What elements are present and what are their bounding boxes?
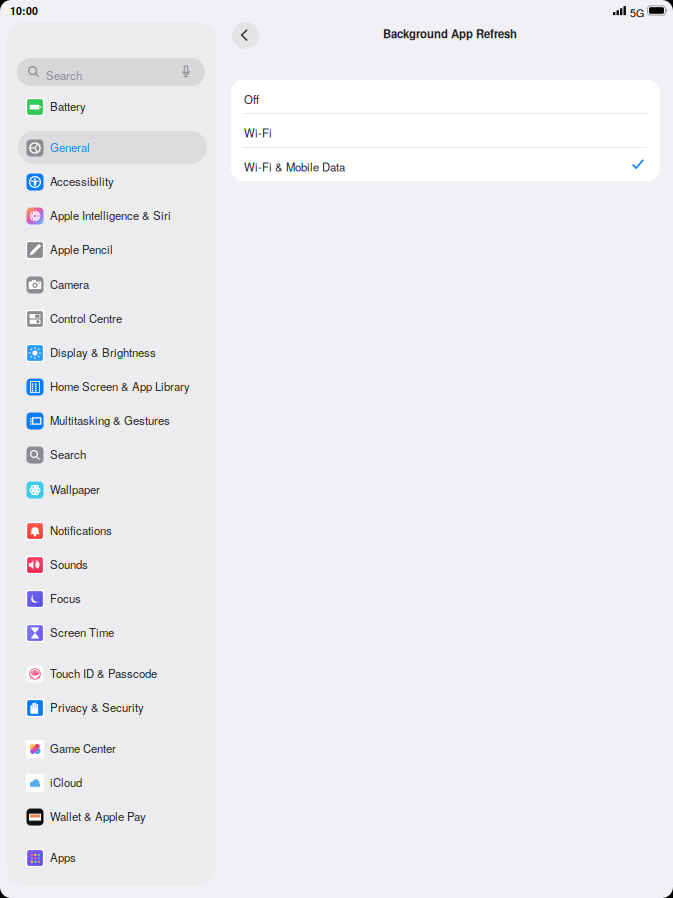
button[interactable]: Control Centre [18,302,207,335]
button[interactable]: Sounds [18,548,207,581]
button[interactable]: Notifications [18,514,207,547]
button[interactable]: Privacy & Security [18,691,207,724]
staticText: Wallet & Apple Pay [50,808,146,824]
staticText: Search [46,67,82,83]
button[interactable]: Game Center [18,732,207,765]
staticText: Accessibility [50,173,114,189]
staticText: iCloud [50,774,82,790]
staticText: Camera [50,276,89,292]
staticText: Control Centre [50,310,122,326]
button[interactable]: Display & Brightness [18,336,207,369]
button[interactable]: Touch ID & Passcode [18,657,207,690]
staticText: Display & Brightness [50,344,156,360]
staticText: Focus [50,590,81,606]
button[interactable]: General [18,131,207,164]
staticText: 10:00 [10,3,38,18]
button[interactable]: Wallet & Apple Pay [18,800,207,833]
button[interactable]: Apps [18,841,207,874]
button[interactable]: iCloud [18,766,207,799]
button[interactable]: Home Screen & App Library [18,370,207,403]
staticText: Search [50,446,86,462]
staticText: Privacy & Security [50,699,144,715]
staticText: Apple Pencil [50,241,113,257]
staticText: Screen Time [50,624,114,640]
staticText: Wi-Fi [244,124,272,141]
button[interactable]: Search [17,58,205,86]
button[interactable]: Screen Time [18,616,207,649]
button[interactable]: Wi-Fi & Mobile Data [231,147,660,181]
staticText: Notifications [50,522,112,538]
staticText: Apps [50,849,76,865]
button[interactable]: Multitasking & Gestures [18,404,207,437]
button[interactable]: Wi-Fi [231,113,660,147]
staticText: Sounds [50,556,88,572]
button[interactable]: Focus [18,582,207,615]
staticText: Game Center [50,740,116,756]
button[interactable]: Back [232,22,259,49]
button[interactable]: Off [231,80,660,113]
staticText: General [50,139,90,155]
button[interactable]: Battery [18,90,207,123]
staticText: 5G [630,5,644,20]
staticText: Battery [50,98,86,114]
button[interactable]: Camera [18,268,207,301]
staticText: Wallpaper [50,481,100,497]
button[interactable]: Wallpaper [18,473,207,506]
staticText: Touch ID & Passcode [50,665,157,681]
staticText: Background App Refresh [383,25,517,42]
button[interactable]: Apple Intelligence & Siri [18,199,207,232]
staticText: Off [244,91,259,107]
staticText: Multitasking & Gestures [50,412,170,428]
button[interactable]: Search [18,438,207,471]
staticText: Apple Intelligence & Siri [50,207,171,223]
staticText: Wi-Fi & Mobile Data [244,158,345,175]
staticText: Home Screen & App Library [50,378,190,394]
button[interactable]: Apple Pencil [18,233,207,266]
button[interactable]: Accessibility [18,165,207,198]
